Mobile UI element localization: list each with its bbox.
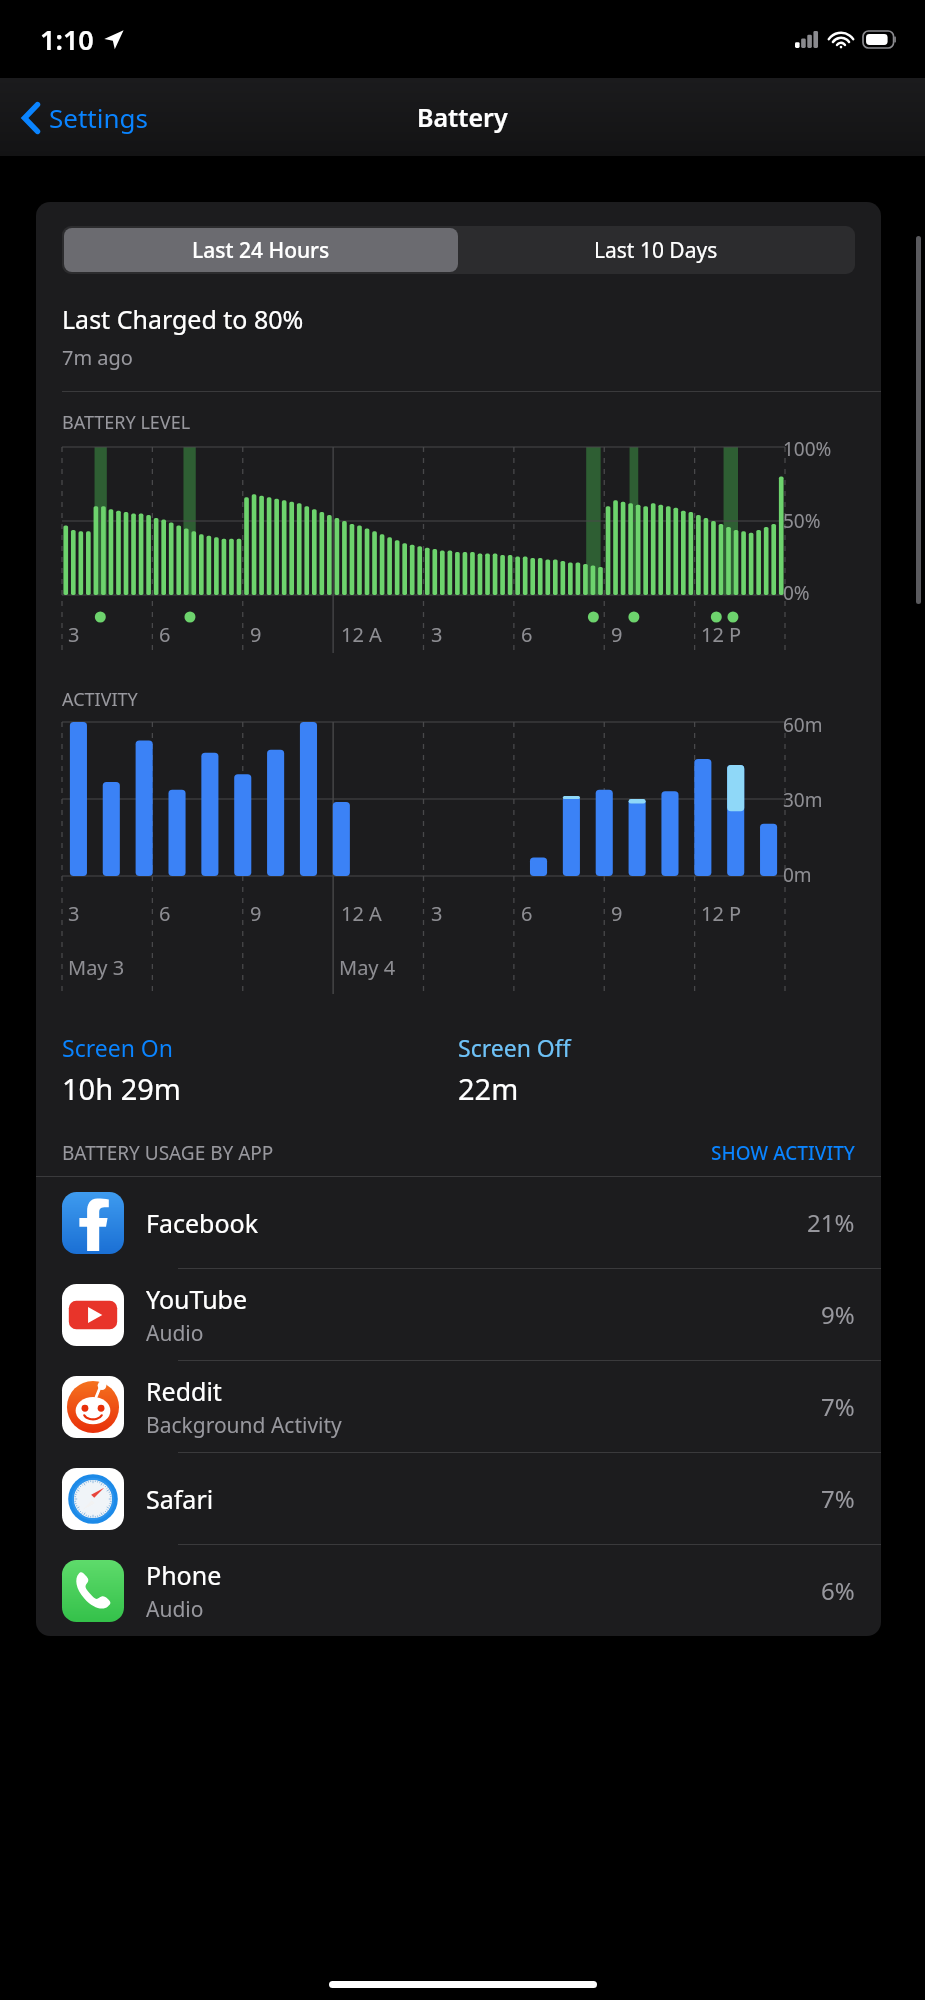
staticText: 1:10 (40, 21, 94, 58)
staticText: 7% (821, 1482, 855, 1515)
staticText: 22m (458, 1069, 519, 1108)
staticText: YouTube (146, 1282, 248, 1316)
staticText: 3 (68, 621, 80, 648)
staticText: 9 (250, 900, 262, 927)
staticText: 60m (783, 712, 823, 738)
button[interactable]: Safari (36, 1453, 881, 1544)
staticText: May 3 (68, 954, 125, 981)
staticText: SHOW ACTIVITY (711, 1140, 855, 1166)
staticText: 6 (521, 621, 533, 648)
staticText: 9 (611, 900, 623, 927)
staticText: ACTIVITY (62, 687, 138, 712)
staticText: 7m ago (62, 344, 133, 371)
staticText: 9% (821, 1298, 855, 1331)
staticText: Battery (417, 100, 508, 134)
staticText: 12 P (701, 621, 742, 648)
staticText: 9 (611, 621, 623, 648)
button[interactable]: SHOW ACTIVITY (711, 1140, 855, 1166)
button[interactable]: Reddit (36, 1361, 881, 1452)
button[interactable]: Phone (36, 1545, 881, 1636)
button[interactable]: Facebook (36, 1177, 881, 1268)
staticText: 12 A (341, 900, 382, 927)
staticText: Screen Off (458, 1032, 571, 1063)
staticText: 0% (783, 580, 810, 606)
button[interactable]: Last 10 Days (458, 228, 853, 272)
staticText: 10h 29m (62, 1069, 181, 1108)
staticText: 30m (783, 787, 823, 813)
staticText: Background Activity (146, 1411, 342, 1440)
staticText: Last 10 Days (594, 236, 718, 265)
staticText: 21% (807, 1206, 855, 1239)
staticText: 6 (521, 900, 533, 927)
staticText: 0m (783, 862, 812, 888)
staticText: 3 (68, 900, 80, 927)
staticText: May 4 (339, 954, 396, 981)
button[interactable]: Settings (16, 94, 154, 141)
staticText: Audio (146, 1319, 204, 1348)
staticText: BATTERY LEVEL (62, 410, 191, 435)
staticText: 7% (821, 1390, 855, 1423)
staticText: Settings (49, 100, 148, 135)
staticText: Last 24 Hours (192, 236, 330, 265)
staticText: Last Charged to 80% (62, 302, 304, 336)
staticText: 6 (159, 621, 171, 648)
staticText: BATTERY USAGE BY APP (62, 1140, 274, 1166)
staticText: Safari (146, 1482, 214, 1516)
staticText: 6 (159, 900, 171, 927)
staticText: 3 (431, 900, 443, 927)
staticText: Audio (146, 1595, 204, 1624)
staticText: Screen On (62, 1032, 174, 1063)
staticText: 12 A (341, 621, 382, 648)
staticText: 12 P (701, 900, 742, 927)
button[interactable]: Last 24 Hours (64, 228, 458, 272)
staticText: 100% (783, 436, 832, 462)
staticText: 3 (431, 621, 443, 648)
staticText: Reddit (146, 1374, 222, 1408)
staticText: 50% (783, 508, 821, 534)
staticText: 9 (250, 621, 262, 648)
staticText: Phone (146, 1558, 222, 1592)
staticText: 6% (821, 1574, 855, 1607)
staticText: Facebook (146, 1206, 259, 1240)
button[interactable]: YouTube (36, 1269, 881, 1360)
